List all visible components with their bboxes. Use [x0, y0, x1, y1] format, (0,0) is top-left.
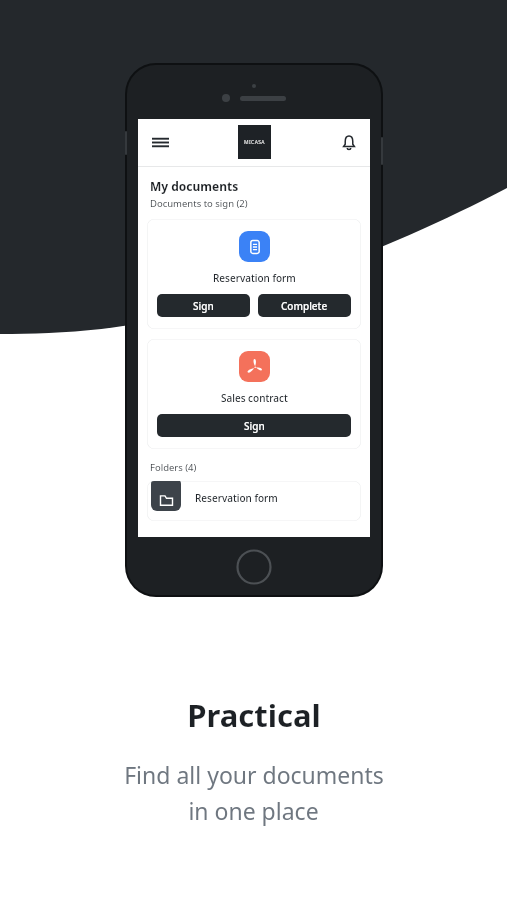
button[interactable]: Complete: [258, 294, 351, 317]
staticText: Sales contract: [221, 391, 288, 405]
staticText: Reservation form: [213, 271, 296, 285]
staticText: Reservation form: [195, 491, 278, 505]
button[interactable]: MICASA: [238, 125, 271, 159]
button[interactable]: Notifications: [340, 134, 358, 152]
button[interactable]: Menu: [150, 132, 171, 153]
button[interactable]: Reservation form: [147, 481, 361, 521]
staticText: Folders (4): [150, 461, 197, 474]
staticText: MICASA: [244, 139, 265, 146]
staticText: Find all your documents: [124, 759, 384, 790]
button[interactable]: Reservation form: [147, 219, 361, 329]
button[interactable]: Sales contract: [147, 339, 361, 449]
staticText: in one place: [188, 795, 319, 826]
staticText: Sign: [244, 419, 265, 433]
button[interactable]: Sign: [157, 414, 351, 437]
staticText: Sign: [193, 299, 214, 313]
staticText: My documents: [150, 178, 239, 194]
button[interactable]: Sign: [157, 294, 250, 317]
staticText: Documents to sign (2): [150, 197, 248, 210]
staticText: Complete: [281, 299, 328, 313]
staticText: Practical: [187, 694, 321, 736]
